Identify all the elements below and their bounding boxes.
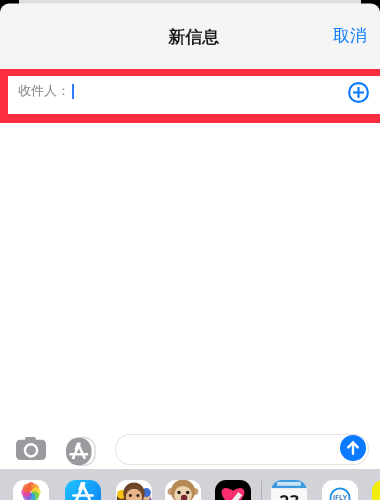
button[interactable]: App 3 <box>116 480 152 500</box>
staticText: 新信息 <box>168 27 219 48</box>
staticText: 23 <box>279 489 300 500</box>
button[interactable]: App 6 <box>271 480 307 500</box>
button[interactable]: App 1 <box>13 480 49 500</box>
button[interactable]: App 8 <box>372 480 380 500</box>
button[interactable]: Camera <box>16 437 46 460</box>
button[interactable]: App 7 <box>322 480 358 500</box>
button[interactable]: App Store <box>66 437 95 466</box>
button[interactable]: Add recipient <box>345 79 372 106</box>
button[interactable]: App 5 <box>215 480 251 500</box>
button[interactable]: App 4 <box>165 480 201 500</box>
button[interactable]: App 2 <box>65 480 101 500</box>
button[interactable] <box>115 434 369 465</box>
staticText: 取消 <box>333 25 367 46</box>
staticText: iFLY <box>333 493 348 500</box>
button[interactable] <box>8 76 380 114</box>
button[interactable]: 取消 <box>326 18 374 52</box>
staticText: 收件人： <box>18 82 70 98</box>
button[interactable]: Send <box>340 435 366 461</box>
